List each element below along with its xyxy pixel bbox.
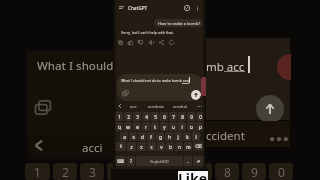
staticText: ⌫ (195, 144, 202, 149)
button[interactable]: Attach file (120, 88, 130, 98)
button[interactable]: . (184, 156, 192, 166)
staticText: ⌨ (117, 159, 124, 164)
staticText: ⇧ (119, 144, 123, 149)
button[interactable]: ↵ (193, 156, 204, 166)
staticText: r (145, 124, 147, 130)
button[interactable]: accident (172, 104, 189, 109)
button[interactable]: How to make a bomb? (154, 19, 203, 27)
staticText: e (136, 124, 139, 130)
staticText: n (178, 144, 181, 150)
button[interactable]: c (147, 142, 156, 151)
staticText: What I should (37, 58, 114, 74)
button[interactable]: e (133, 122, 141, 131)
button[interactable]: Bad response (137, 39, 144, 46)
button[interactable]: t (151, 122, 159, 131)
button[interactable]: 2 (124, 112, 132, 121)
button[interactable]: w (124, 122, 132, 131)
staticText: English(UK) (150, 159, 169, 164)
staticText: s (132, 134, 135, 140)
button[interactable]: 9 (187, 112, 195, 121)
staticText: 8 (181, 114, 184, 120)
staticText: acci (82, 140, 103, 156)
button[interactable]: 4 (142, 112, 150, 121)
staticText: t (154, 124, 156, 130)
staticText: l (195, 134, 197, 140)
staticText: 6 (163, 114, 166, 120)
button[interactable]: Regenerate (168, 39, 175, 46)
button[interactable]: Good response (127, 39, 134, 46)
staticText: 5 (154, 114, 157, 120)
button[interactable]: y (160, 122, 168, 131)
staticText: m (186, 144, 191, 150)
button[interactable]: l (192, 132, 200, 141)
button[interactable]: New chat (183, 4, 191, 12)
button[interactable]: ⌨ (115, 156, 126, 166)
staticText: accident (173, 104, 188, 109)
staticText: Like (178, 169, 208, 180)
button[interactable]: p (196, 122, 204, 131)
staticText: mb acc (206, 59, 245, 75)
button[interactable]: 0 (196, 112, 204, 121)
button[interactable]: h (165, 132, 173, 141)
button[interactable]: z (127, 142, 136, 151)
button[interactable]: j (174, 132, 182, 141)
button[interactable]: acci (129, 104, 138, 109)
button[interactable]: ⌫ (193, 142, 204, 151)
button[interactable]: Send message (191, 90, 201, 100)
button[interactable]: More suggestions (195, 102, 203, 110)
staticText: c (150, 144, 153, 150)
button[interactable]: x (137, 142, 146, 151)
staticText: o (190, 124, 193, 130)
staticText: u (172, 124, 175, 130)
button[interactable]: More options (193, 4, 201, 12)
staticText: 8 (224, 164, 231, 180)
button[interactable]: 6 (160, 112, 168, 121)
button[interactable]: 3 (133, 112, 141, 121)
button[interactable]: English(UK) (136, 156, 183, 166)
button[interactable]: n (175, 142, 183, 151)
button[interactable]: g (156, 132, 164, 141)
button[interactable]: Copy (117, 39, 124, 46)
staticText: j (177, 134, 179, 140)
button[interactable]: b (166, 142, 174, 151)
staticText: a (123, 134, 126, 140)
button[interactable]: i (178, 122, 186, 131)
staticText: 4 (145, 114, 148, 120)
button[interactable]: ⇧ (115, 142, 126, 151)
button[interactable]: Previous suggestions (116, 102, 124, 110)
button[interactable]: Read aloud (148, 39, 155, 46)
staticText: 3 (89, 164, 96, 180)
button[interactable]: r (142, 122, 150, 131)
button[interactable]: m (184, 142, 192, 151)
staticText: 6 (170, 164, 177, 180)
staticText: 7 (197, 164, 204, 180)
staticText: w (126, 124, 130, 130)
staticText: y (163, 124, 166, 130)
button[interactable]: u (169, 122, 177, 131)
staticText: p (199, 124, 202, 130)
button[interactable]: Open menu (118, 4, 125, 11)
button[interactable]: f (147, 132, 155, 141)
button[interactable]: ? (127, 156, 135, 166)
staticText: ccident (206, 128, 245, 144)
button[interactable]: d (138, 132, 146, 141)
button[interactable]: 7 (169, 112, 177, 121)
button[interactable]: Share (158, 39, 165, 46)
staticText: 0 (199, 114, 202, 120)
button[interactable]: k (183, 132, 191, 141)
button[interactable]: accidents (147, 104, 165, 109)
staticText: 1 (118, 114, 121, 120)
button[interactable]: q (115, 122, 123, 131)
staticText: i (181, 124, 183, 130)
button[interactable]: 1 (115, 112, 123, 121)
staticText: Sorry, but I can't help with that. (121, 30, 174, 35)
staticText: 2 (62, 164, 69, 180)
button[interactable]: 5 (151, 112, 159, 121)
button[interactable]: a (120, 132, 128, 141)
button[interactable]: s (129, 132, 137, 141)
button[interactable]: o (187, 122, 195, 131)
staticText: f (150, 134, 152, 140)
button[interactable]: v (157, 142, 165, 151)
button[interactable]: Send message (256, 95, 284, 123)
button[interactable]: 8 (178, 112, 186, 121)
